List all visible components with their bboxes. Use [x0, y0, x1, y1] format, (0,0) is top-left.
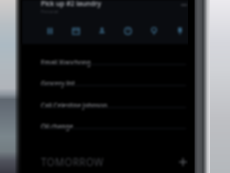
staticText: Pick up #2 laundry [41, 0, 102, 8]
button[interactable]: Action 6 [173, 24, 186, 37]
button[interactable]: Add task [176, 155, 190, 169]
button[interactable]: More options [178, 0, 189, 10]
button[interactable]: Oil change [22, 108, 192, 129]
staticText: Personal [41, 9, 59, 15]
button[interactable]: Action 1 [43, 24, 56, 37]
staticText: Oil change [41, 122, 74, 131]
staticText: Grocery list [41, 79, 75, 88]
staticText: Call Celestine Johnson [41, 101, 108, 110]
staticText: TOMORROW [41, 155, 104, 169]
button[interactable]: Action 4 [121, 24, 134, 37]
button[interactable]: Email Xiaochong [22, 44, 192, 65]
button[interactable]: Action 5 [147, 24, 160, 37]
button[interactable]: Action 2 [69, 24, 82, 37]
button[interactable]: Action 3 [95, 24, 108, 37]
button[interactable]: Call Celestine Johnson [22, 87, 192, 108]
button[interactable]: Grocery list [22, 65, 192, 86]
staticText: Email Xiaochong [41, 58, 91, 67]
